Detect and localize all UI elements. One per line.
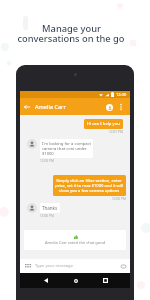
staticText: 12:30	[116, 92, 127, 97]
staticText: Type your message	[35, 263, 74, 269]
button[interactable]: Back	[40, 275, 51, 286]
button[interactable]: Add attachment	[119, 262, 127, 270]
staticText: Thanks	[42, 205, 58, 211]
staticText: conversations on the go	[17, 32, 125, 45]
staticText: Amelia Carr	[35, 103, 66, 111]
button[interactable]: More options	[116, 102, 125, 111]
button[interactable]: Contact profile	[104, 102, 114, 112]
staticText: I'm looking for a compact camera that co…	[42, 141, 91, 156]
button[interactable]: Keyboard	[24, 262, 32, 270]
staticText: 12:03 PM	[40, 159, 54, 163]
staticText: Manage your	[42, 22, 101, 35]
staticText: 12:06 PM	[40, 214, 54, 218]
staticText: Simply click on filter section, enter pr…	[55, 178, 123, 193]
staticText: 12:05 PM	[112, 197, 126, 201]
staticText: 12:01 PM	[109, 130, 123, 134]
staticText: Hi can I help you	[87, 121, 120, 127]
button[interactable]: Home	[70, 275, 81, 286]
button[interactable]: Recent apps	[100, 275, 111, 286]
button[interactable]: Back	[22, 102, 32, 112]
staticText: Amelia Carr rated the chat good	[45, 240, 106, 245]
